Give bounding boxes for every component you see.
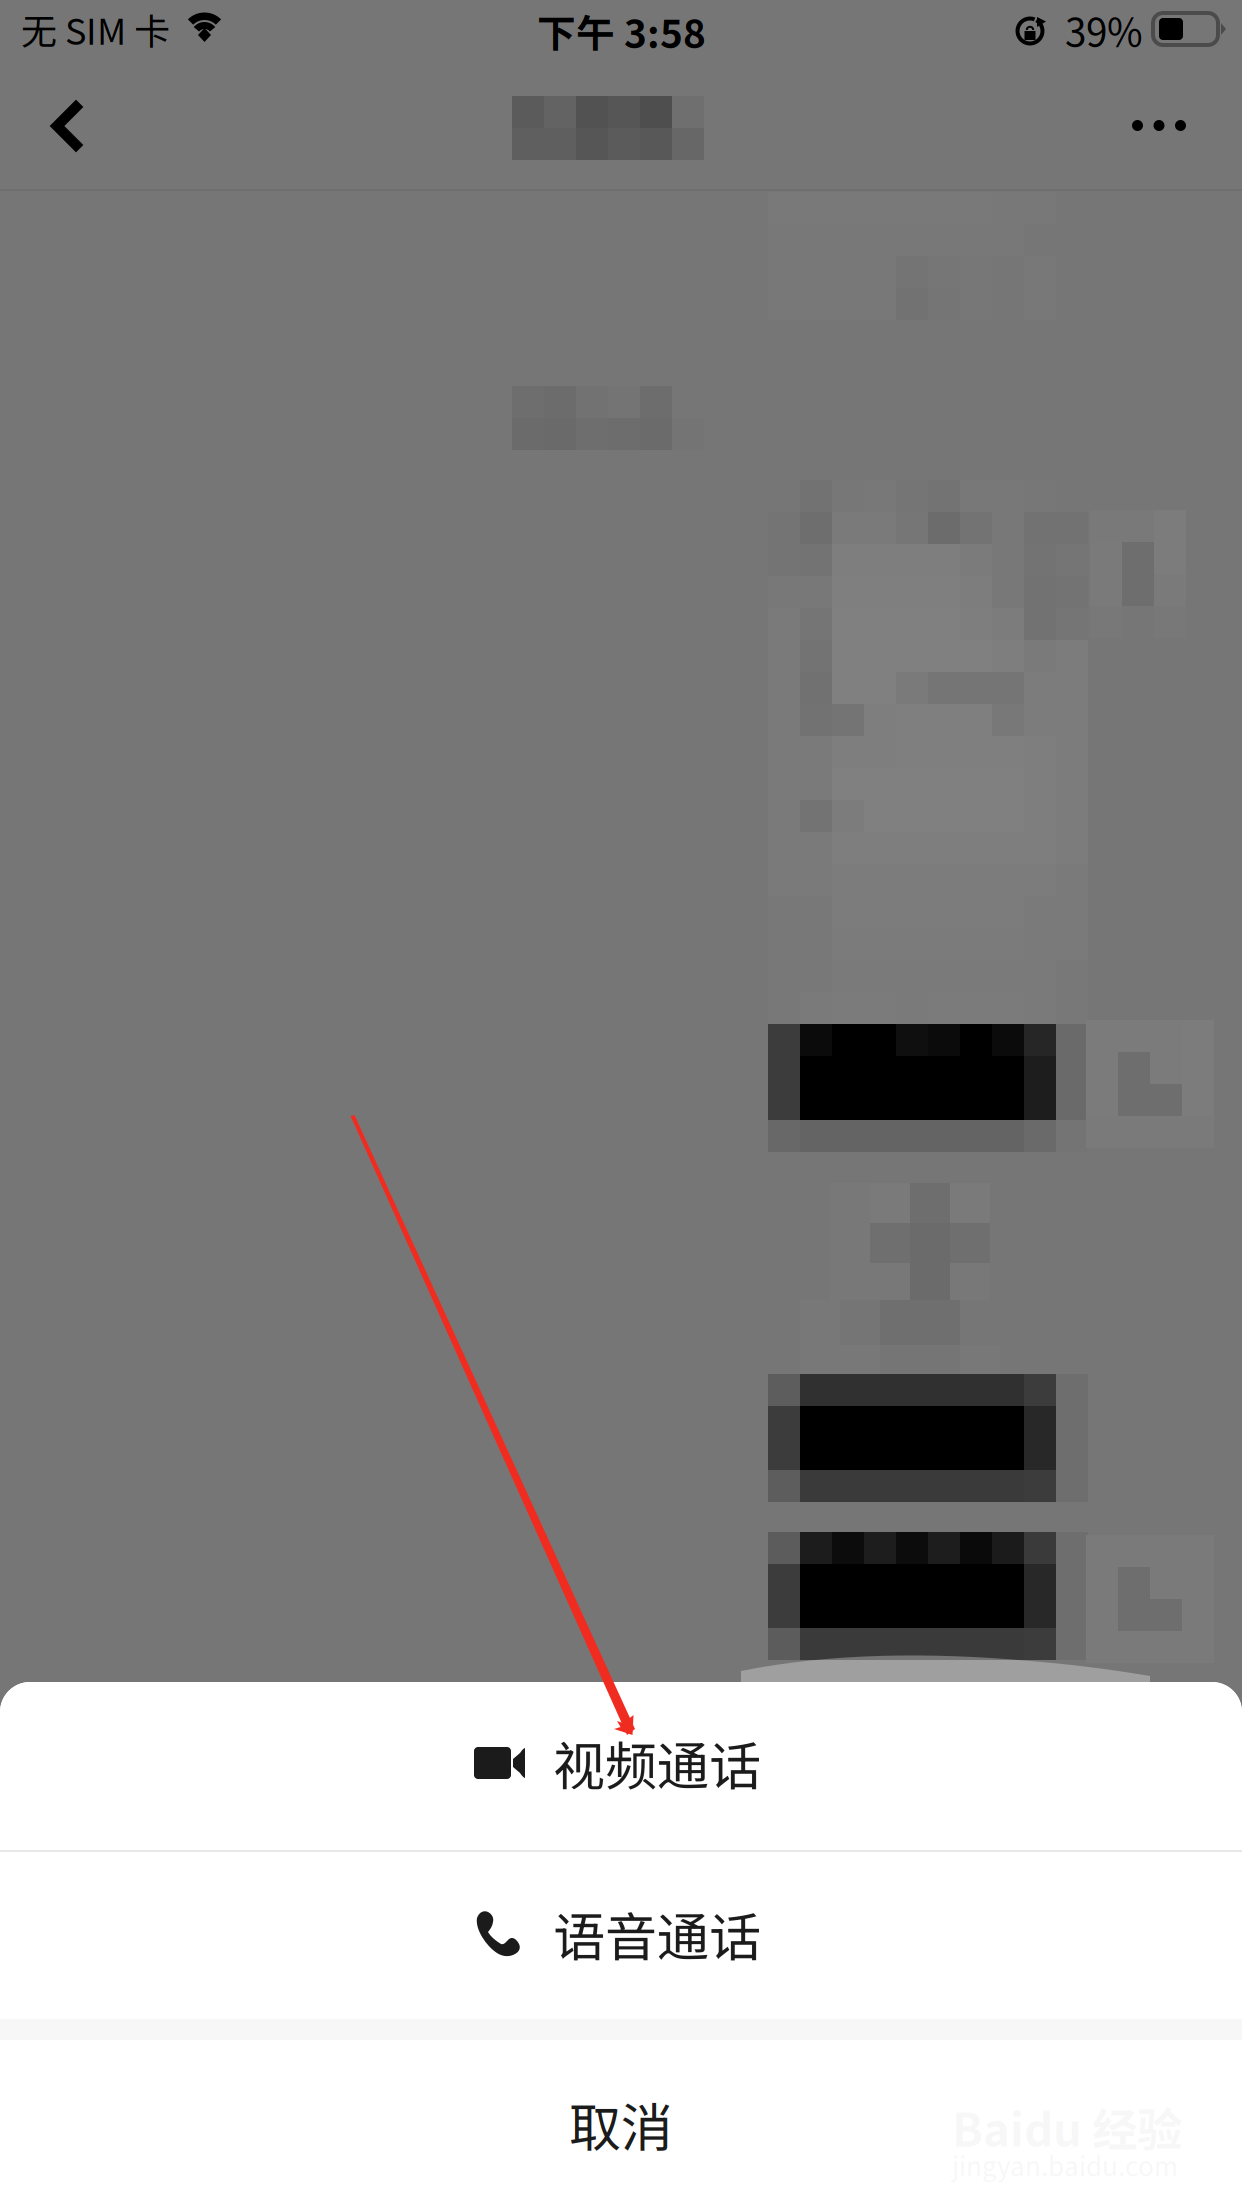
staticText: Baidu 经验 [952,2094,1182,2160]
staticText: 39% [1065,2,1143,58]
staticText: 视频通话 [553,1725,761,1800]
button[interactable]: 视频通话 [0,1682,1242,1850]
staticText: 下午 3:58 [537,3,706,59]
button[interactable]: 语音通话 [0,1852,1242,2019]
button[interactable]: More [1102,76,1218,176]
button[interactable]: 取消 [0,2040,1242,2208]
staticText: 取消 [569,2086,673,2162]
staticText: 无 SIM 卡 [21,3,170,55]
button[interactable]: Back [6,71,116,181]
staticText: 语音通话 [553,1896,761,1971]
